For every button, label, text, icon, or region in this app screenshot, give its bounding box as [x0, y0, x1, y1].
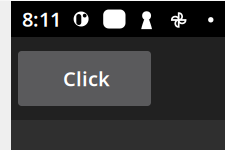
staticText: 8:11	[22, 6, 61, 32]
button[interactable]: Click	[18, 51, 151, 106]
staticText: Click	[63, 65, 110, 92]
